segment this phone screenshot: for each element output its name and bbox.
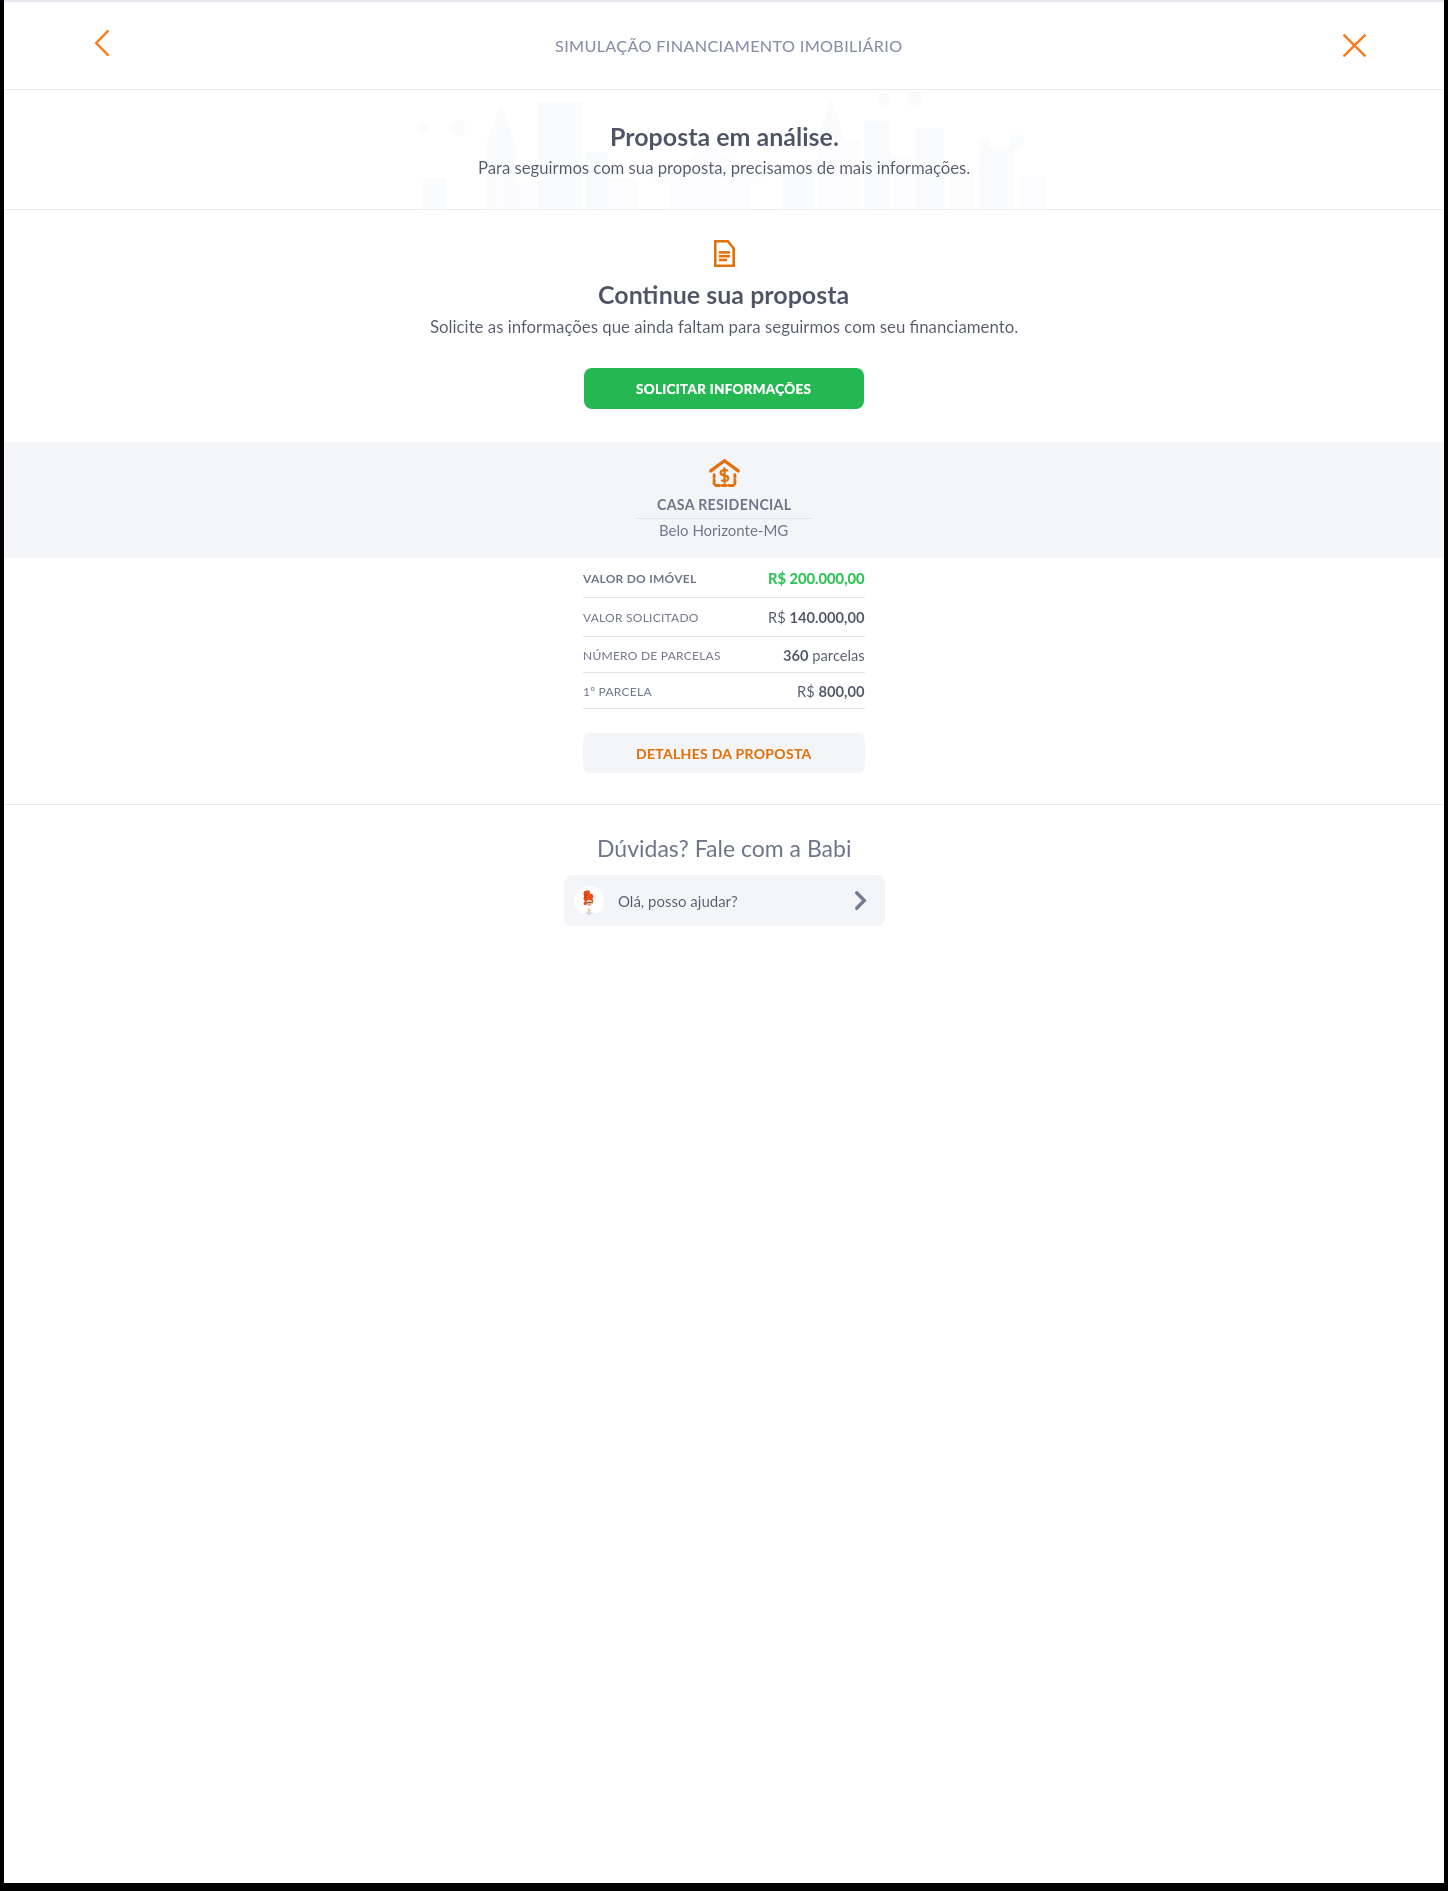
staticText: DETALHES DA PROPOSTA [636,745,812,762]
staticText: R$ 200.000,00 [768,569,865,587]
staticText: Proposta em análise. [610,121,839,151]
staticText: R$ 140.000,00 [768,608,865,626]
staticText: R$ 800,00 [797,682,865,700]
button[interactable]: Olá, posso ajudar? [564,875,885,926]
button[interactable]: DETALHES DA PROPOSTA [583,733,865,773]
staticText: 360 parcelas [783,646,865,664]
staticText: VALOR SOLICITADO [583,610,699,624]
staticText: CASA RESIDENCIAL [657,496,792,513]
staticText: NÚMERO DE PARCELAS [583,648,721,662]
staticText: SIMULAÇÃO FINANCIAMENTO IMOBILIÁRIO [555,36,903,55]
staticText: SOLICITAR INFORMAÇÕES [636,381,812,397]
staticText: 1º PARCELA [583,684,652,698]
button[interactable]: SOLICITAR INFORMAÇÕES [584,368,864,409]
staticText: VALOR DO IMÓVEL [583,571,697,585]
staticText: Dúvidas? Fale com a Babi [597,834,852,862]
staticText: Olá, posso ajudar? [618,892,738,910]
staticText: Belo Horizonte-MG [659,521,789,539]
staticText: Solicite as informações que ainda faltam… [430,316,1019,336]
staticText: Continue sua proposta [598,279,850,309]
button[interactable]: Voltar [76,17,128,69]
button[interactable]: Fechar [1328,19,1380,71]
staticText: Para seguirmos com sua proposta, precisa… [478,158,971,178]
